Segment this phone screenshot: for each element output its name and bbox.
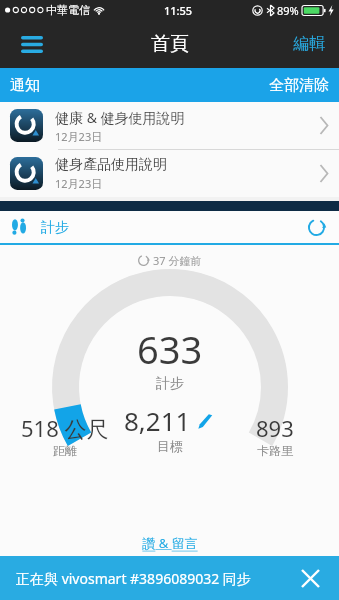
- staticText: 讚 & 留言: [142, 534, 198, 552]
- button[interactable]: Refresh: [303, 214, 329, 240]
- button[interactable]: Close: [295, 563, 325, 593]
- staticText: 89%: [277, 3, 299, 18]
- staticText: 37 分鐘前: [153, 253, 202, 268]
- button[interactable]: 計步: [0, 211, 339, 243]
- button[interactable]: 全部清除: [259, 70, 339, 101]
- staticText: 12月23日: [55, 129, 103, 144]
- staticText: 通知: [10, 76, 40, 95]
- button[interactable]: 健身產品使用說明: [0, 149, 339, 197]
- button[interactable]: 編輯: [287, 26, 331, 62]
- staticText: 11:55: [164, 3, 193, 18]
- staticText: 中華電信: [46, 3, 90, 17]
- button[interactable]: 518 公尺: [14, 413, 115, 458]
- staticText: 目標: [157, 438, 183, 454]
- staticText: 計步: [41, 219, 69, 237]
- staticText: 首頁: [151, 32, 189, 56]
- staticText: 633: [137, 323, 203, 375]
- button[interactable]: 893: [225, 413, 325, 458]
- staticText: 健身產品使用說明: [55, 156, 167, 174]
- staticText: 健康 & 健身使用說明: [55, 108, 185, 127]
- button[interactable]: Menu: [12, 24, 52, 64]
- staticText: 計步: [156, 375, 184, 393]
- button[interactable]: 讚 & 留言: [134, 532, 206, 554]
- staticText: 卡路里: [257, 443, 293, 458]
- staticText: 正在與 vivosmart #3896089032 同步: [16, 569, 251, 588]
- staticText: 893: [256, 413, 294, 443]
- staticText: 編輯: [293, 34, 325, 54]
- staticText: 8,211: [124, 403, 191, 438]
- button[interactable]: 健康 & 健身使用說明: [0, 102, 339, 149]
- staticText: 518 公尺: [21, 413, 109, 443]
- staticText: 12月23日: [55, 176, 103, 191]
- staticText: 全部清除: [269, 76, 329, 95]
- staticText: 距離: [53, 443, 77, 458]
- button[interactable]: Edit goal: [195, 411, 215, 431]
